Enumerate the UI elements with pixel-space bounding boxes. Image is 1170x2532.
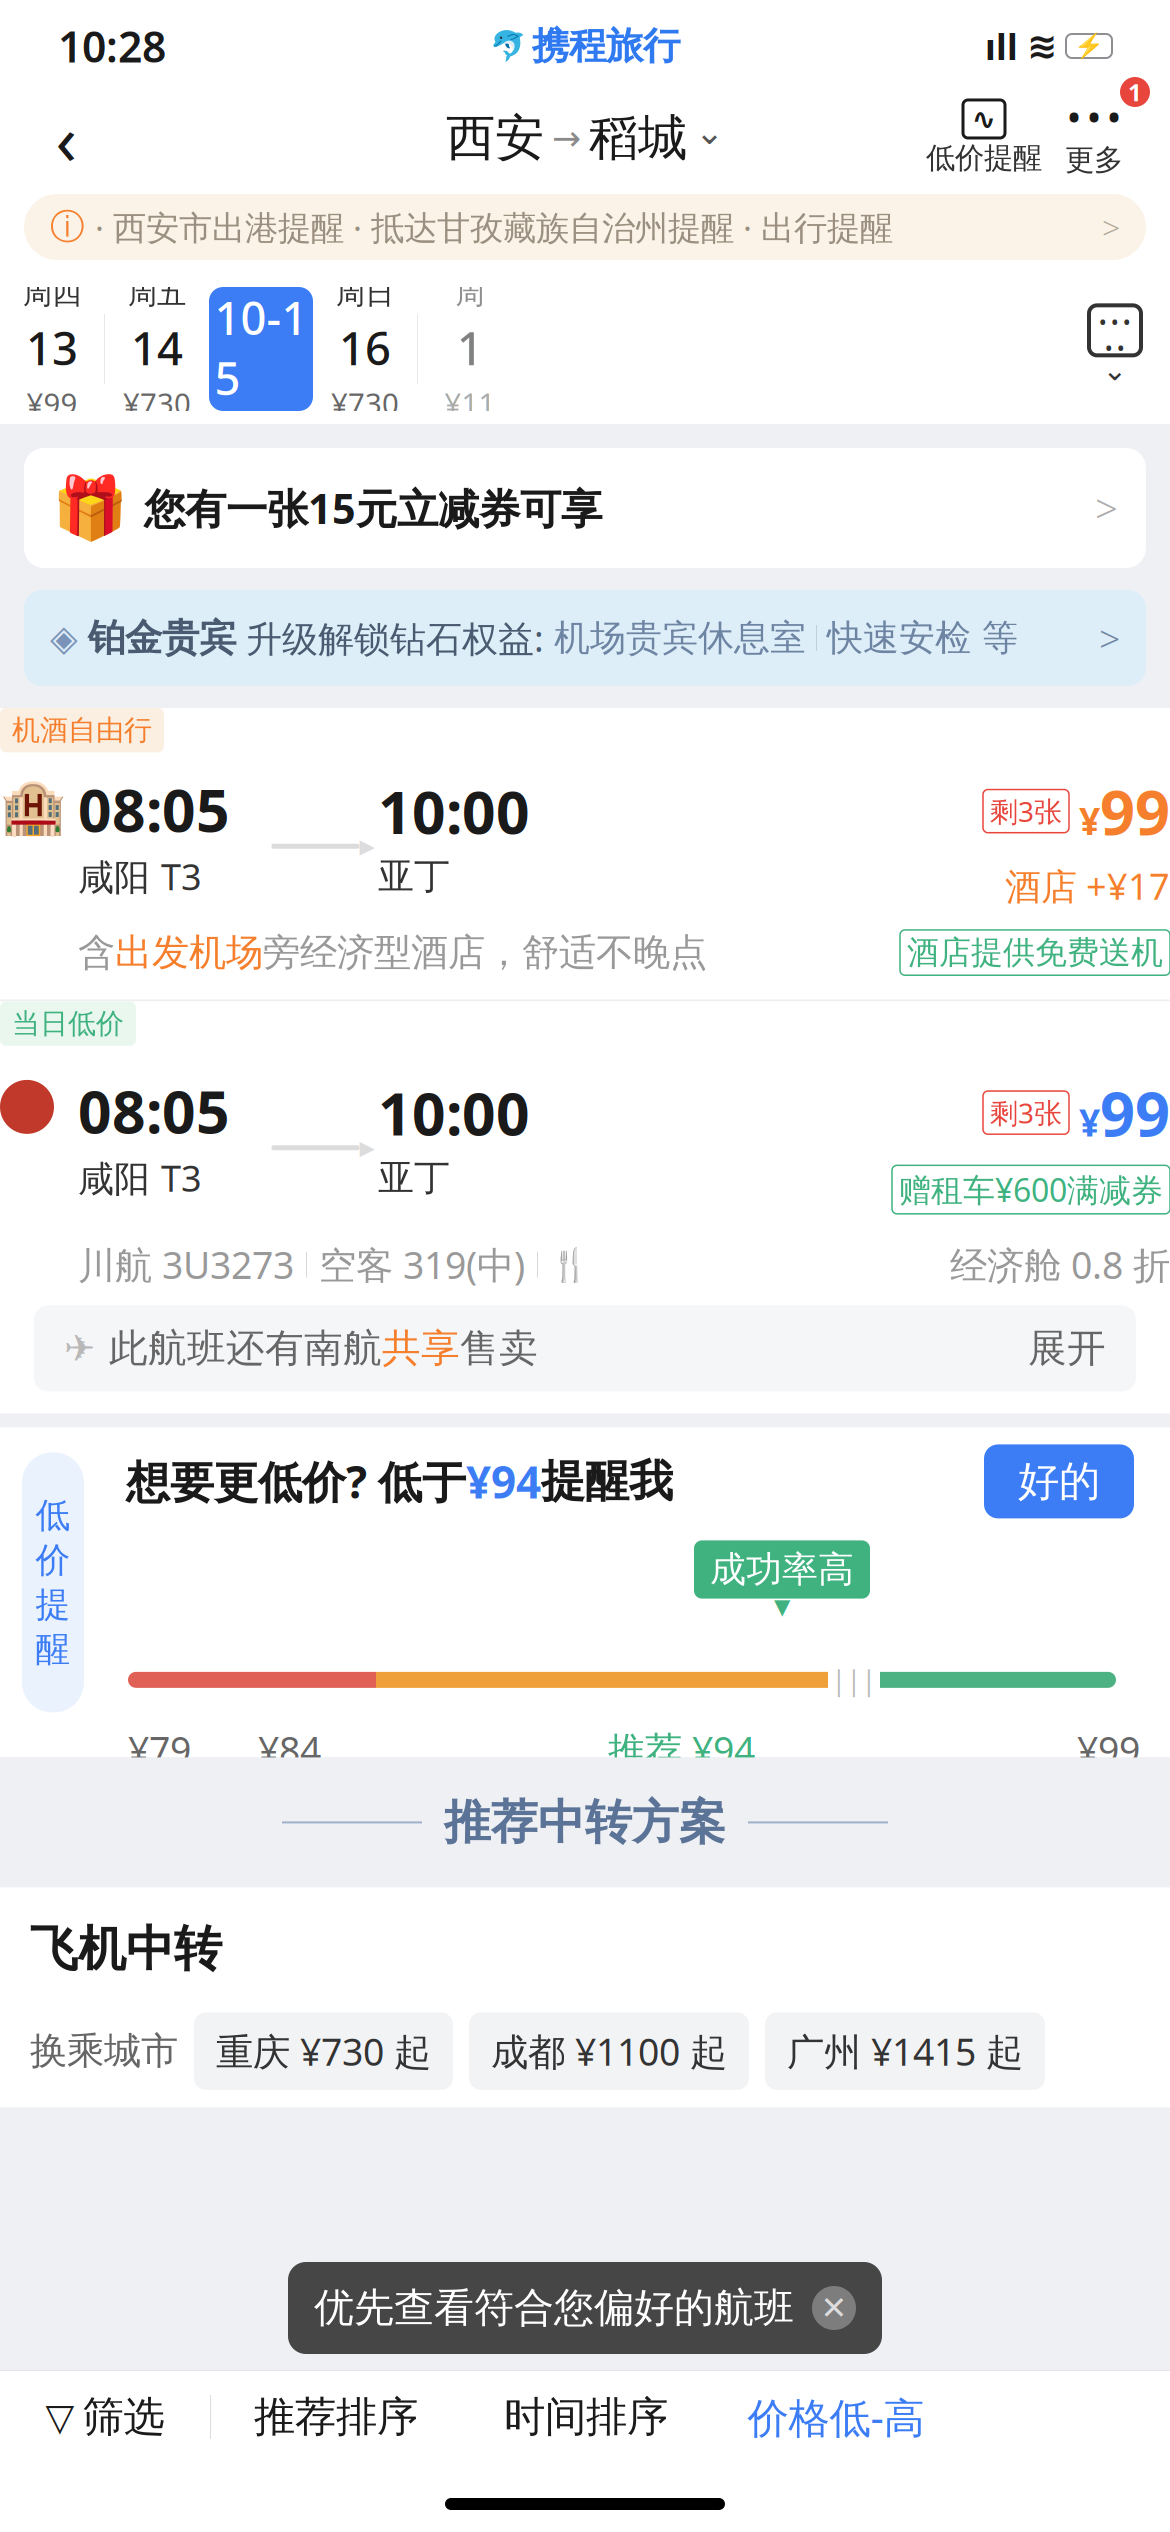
button[interactable]: 当日低价: [0, 1001, 1170, 1305]
staticText: 此航班还有南航: [109, 1325, 382, 1372]
button[interactable]: ◈: [24, 590, 1146, 686]
staticText: ¥99: [235, 414, 286, 453]
staticText: ¥: [1079, 1097, 1100, 1147]
staticText: 赠租车¥600满减券: [899, 1168, 1163, 1211]
staticText: ⚡: [1074, 32, 1104, 60]
staticText: 价: [35, 1539, 70, 1581]
staticText: • •: [1105, 337, 1124, 360]
staticText: 🐬: [490, 29, 527, 63]
staticText: ⓘ: [50, 206, 85, 248]
button[interactable]: • • •: [1044, 95, 1144, 181]
staticText: →: [552, 118, 581, 158]
staticText: 周六: [232, 245, 290, 281]
staticText: 优先查看符合您偏好的航班: [314, 2283, 794, 2332]
staticText: 周: [455, 275, 484, 311]
button[interactable]: 重庆 ¥730 起: [194, 2012, 453, 2090]
button[interactable]: ✈: [34, 1305, 1136, 1391]
button[interactable]: ∿: [924, 95, 1044, 181]
staticText: >: [1099, 613, 1120, 663]
staticText: 咸阳 T3: [78, 852, 202, 900]
staticText: 10:28: [58, 18, 166, 74]
staticText: 重庆 ¥730 起: [216, 2026, 431, 2076]
staticText: ⌄: [1102, 353, 1127, 387]
staticText: 10:00: [378, 772, 530, 850]
button[interactable]: 成都 ¥1100 起: [469, 2012, 749, 2090]
staticText: ▶: [359, 835, 374, 858]
staticText: ¥94: [466, 1452, 541, 1511]
button[interactable]: 周六: [209, 287, 313, 411]
staticText: 酒店提供免费送机: [907, 933, 1163, 972]
staticText: >: [1095, 481, 1118, 534]
staticText: ✕: [820, 2290, 847, 2326]
staticText: ▶: [359, 1136, 374, 1159]
staticText: 当日低价: [12, 1006, 124, 1041]
staticText: 推荐中转方案: [444, 1794, 726, 1851]
staticText: 好的: [1018, 1456, 1100, 1507]
staticText: 低价提醒: [926, 140, 1042, 176]
button[interactable]: 返回: [26, 98, 106, 178]
button[interactable]: 日历: [1060, 287, 1170, 411]
button[interactable]: 周日: [313, 287, 417, 411]
staticText: 13: [26, 317, 78, 378]
staticText: 出发机场: [115, 930, 263, 975]
staticText: 您有一张15元立减券可享: [144, 481, 602, 535]
staticText: ¥: [1079, 796, 1100, 845]
staticText: 共享: [382, 1325, 460, 1372]
button[interactable]: 周: [418, 287, 522, 411]
button[interactable]: 周四: [0, 287, 104, 411]
staticText: 16: [339, 317, 391, 378]
staticText: 提: [35, 1583, 70, 1626]
button[interactable]: 时间排序: [461, 2371, 711, 2463]
staticText: 咸阳 T3: [78, 1154, 202, 1202]
staticText: 经济舱 0.8 折: [950, 1240, 1170, 1289]
staticText: 亚丁: [378, 1156, 450, 1200]
button[interactable]: 价格低-高: [711, 2371, 961, 2463]
staticText: 提醒我: [541, 1454, 673, 1508]
staticText: 旁经济型酒店，舒适不晚点: [263, 930, 707, 975]
staticText: 时间排序: [504, 2392, 668, 2442]
staticText: 稻城: [589, 108, 687, 168]
staticText: ¥99: [1077, 1725, 1140, 1774]
button[interactable]: 机酒自由行: [0, 708, 1170, 999]
staticText: ¥730: [331, 384, 399, 423]
staticText: 10-15: [214, 287, 307, 408]
button[interactable]: 🎁: [24, 448, 1146, 568]
staticText: 亚丁: [378, 854, 450, 898]
staticText: 醒: [35, 1628, 70, 1671]
staticText: 08:05: [78, 770, 230, 848]
staticText: 川航 3U3273: [78, 1240, 294, 1289]
staticText: ✈: [64, 1327, 95, 1370]
button[interactable]: 广州 ¥1415 起: [765, 2012, 1045, 2090]
staticText: |||: [831, 1662, 876, 1697]
button[interactable]: 推荐排序: [211, 2371, 461, 2463]
staticText: • • •: [1068, 96, 1120, 138]
staticText: 推荐 ¥94: [608, 1725, 755, 1774]
staticText: 🎁: [52, 473, 128, 543]
staticText: ≋: [1027, 26, 1057, 66]
staticText: 机酒自由行: [12, 713, 152, 747]
staticText: 周日: [336, 275, 394, 311]
staticText: 成都 ¥1100 起: [491, 2026, 727, 2076]
button[interactable]: 周五: [105, 287, 209, 411]
button[interactable]: ▽: [0, 2371, 210, 2463]
staticText: 剩3张: [990, 1094, 1062, 1131]
staticText: 售卖: [460, 1325, 538, 1372]
staticText: 展开: [1028, 1325, 1106, 1372]
staticText: ▽: [45, 2396, 74, 2438]
button[interactable]: 关闭提示: [812, 2286, 856, 2330]
staticText: 铂金贵宾: [88, 615, 236, 661]
button[interactable]: ⓘ: [24, 194, 1146, 260]
staticText: 周五: [128, 275, 186, 311]
staticText: 08:05: [78, 1072, 230, 1150]
staticText: 广州 ¥1415 起: [787, 2026, 1023, 2076]
staticText: ¥730: [123, 384, 191, 423]
staticText: 14: [131, 317, 183, 378]
button[interactable]: 好的: [984, 1444, 1134, 1518]
staticText: ¥79: [128, 1725, 191, 1774]
staticText: ‹: [55, 92, 76, 184]
staticText: ¥84: [258, 1725, 321, 1774]
staticText: 1: [1128, 76, 1142, 108]
staticText: 换乘城市: [30, 2028, 178, 2074]
staticText: · 西安市出港提醒 · 抵达甘孜藏族自治州提醒 · 出行提醒: [95, 205, 893, 249]
staticText: 筛选: [82, 2392, 164, 2442]
